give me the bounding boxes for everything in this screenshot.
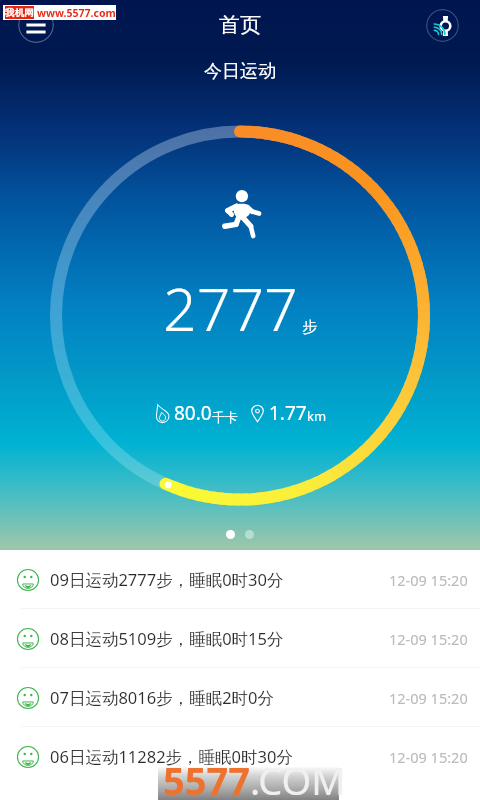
staticText: 09日运动2777步，睡眠0时30分 (50, 568, 284, 591)
staticText: 步 (302, 318, 317, 337)
staticText: 08日运动5109步，睡眠0时15分 (50, 627, 284, 650)
staticText: 80.0 (174, 400, 212, 426)
staticText: 首页 (219, 12, 261, 38)
button[interactable]: 08日运动5109步，睡眠0时15分 (0, 609, 480, 668)
staticText: 2777 (163, 268, 298, 348)
button[interactable]: Device connection (426, 9, 459, 42)
button[interactable]: 09日运动2777步，睡眠0时30分 (0, 550, 480, 609)
button[interactable]: 06日运动11282步，睡眠0时30分 (0, 727, 480, 786)
staticText: 千卡 (212, 409, 238, 425)
staticText: 今日运动 (204, 60, 276, 83)
staticText: 我机网 (5, 7, 34, 19)
button[interactable]: Menu (18, 7, 54, 43)
button[interactable]: 07日运动8016步，睡眠2时0分 (0, 668, 480, 727)
staticText: 07日运动8016步，睡眠2时0分 (50, 686, 275, 709)
staticText: 5577 (163, 754, 250, 800)
staticText: km (307, 407, 327, 425)
staticText: 12-09 15:20 (389, 570, 468, 590)
staticText: 06日运动11282步，睡眠0时30分 (50, 745, 293, 768)
staticText: 1.77 (269, 400, 307, 426)
staticText: 12-09 15:20 (389, 747, 468, 767)
staticText: www.5577.com (37, 6, 116, 20)
staticText: 12-09 15:20 (389, 688, 468, 708)
staticText: .COM (250, 754, 346, 800)
staticText: 12-09 15:20 (389, 629, 468, 649)
